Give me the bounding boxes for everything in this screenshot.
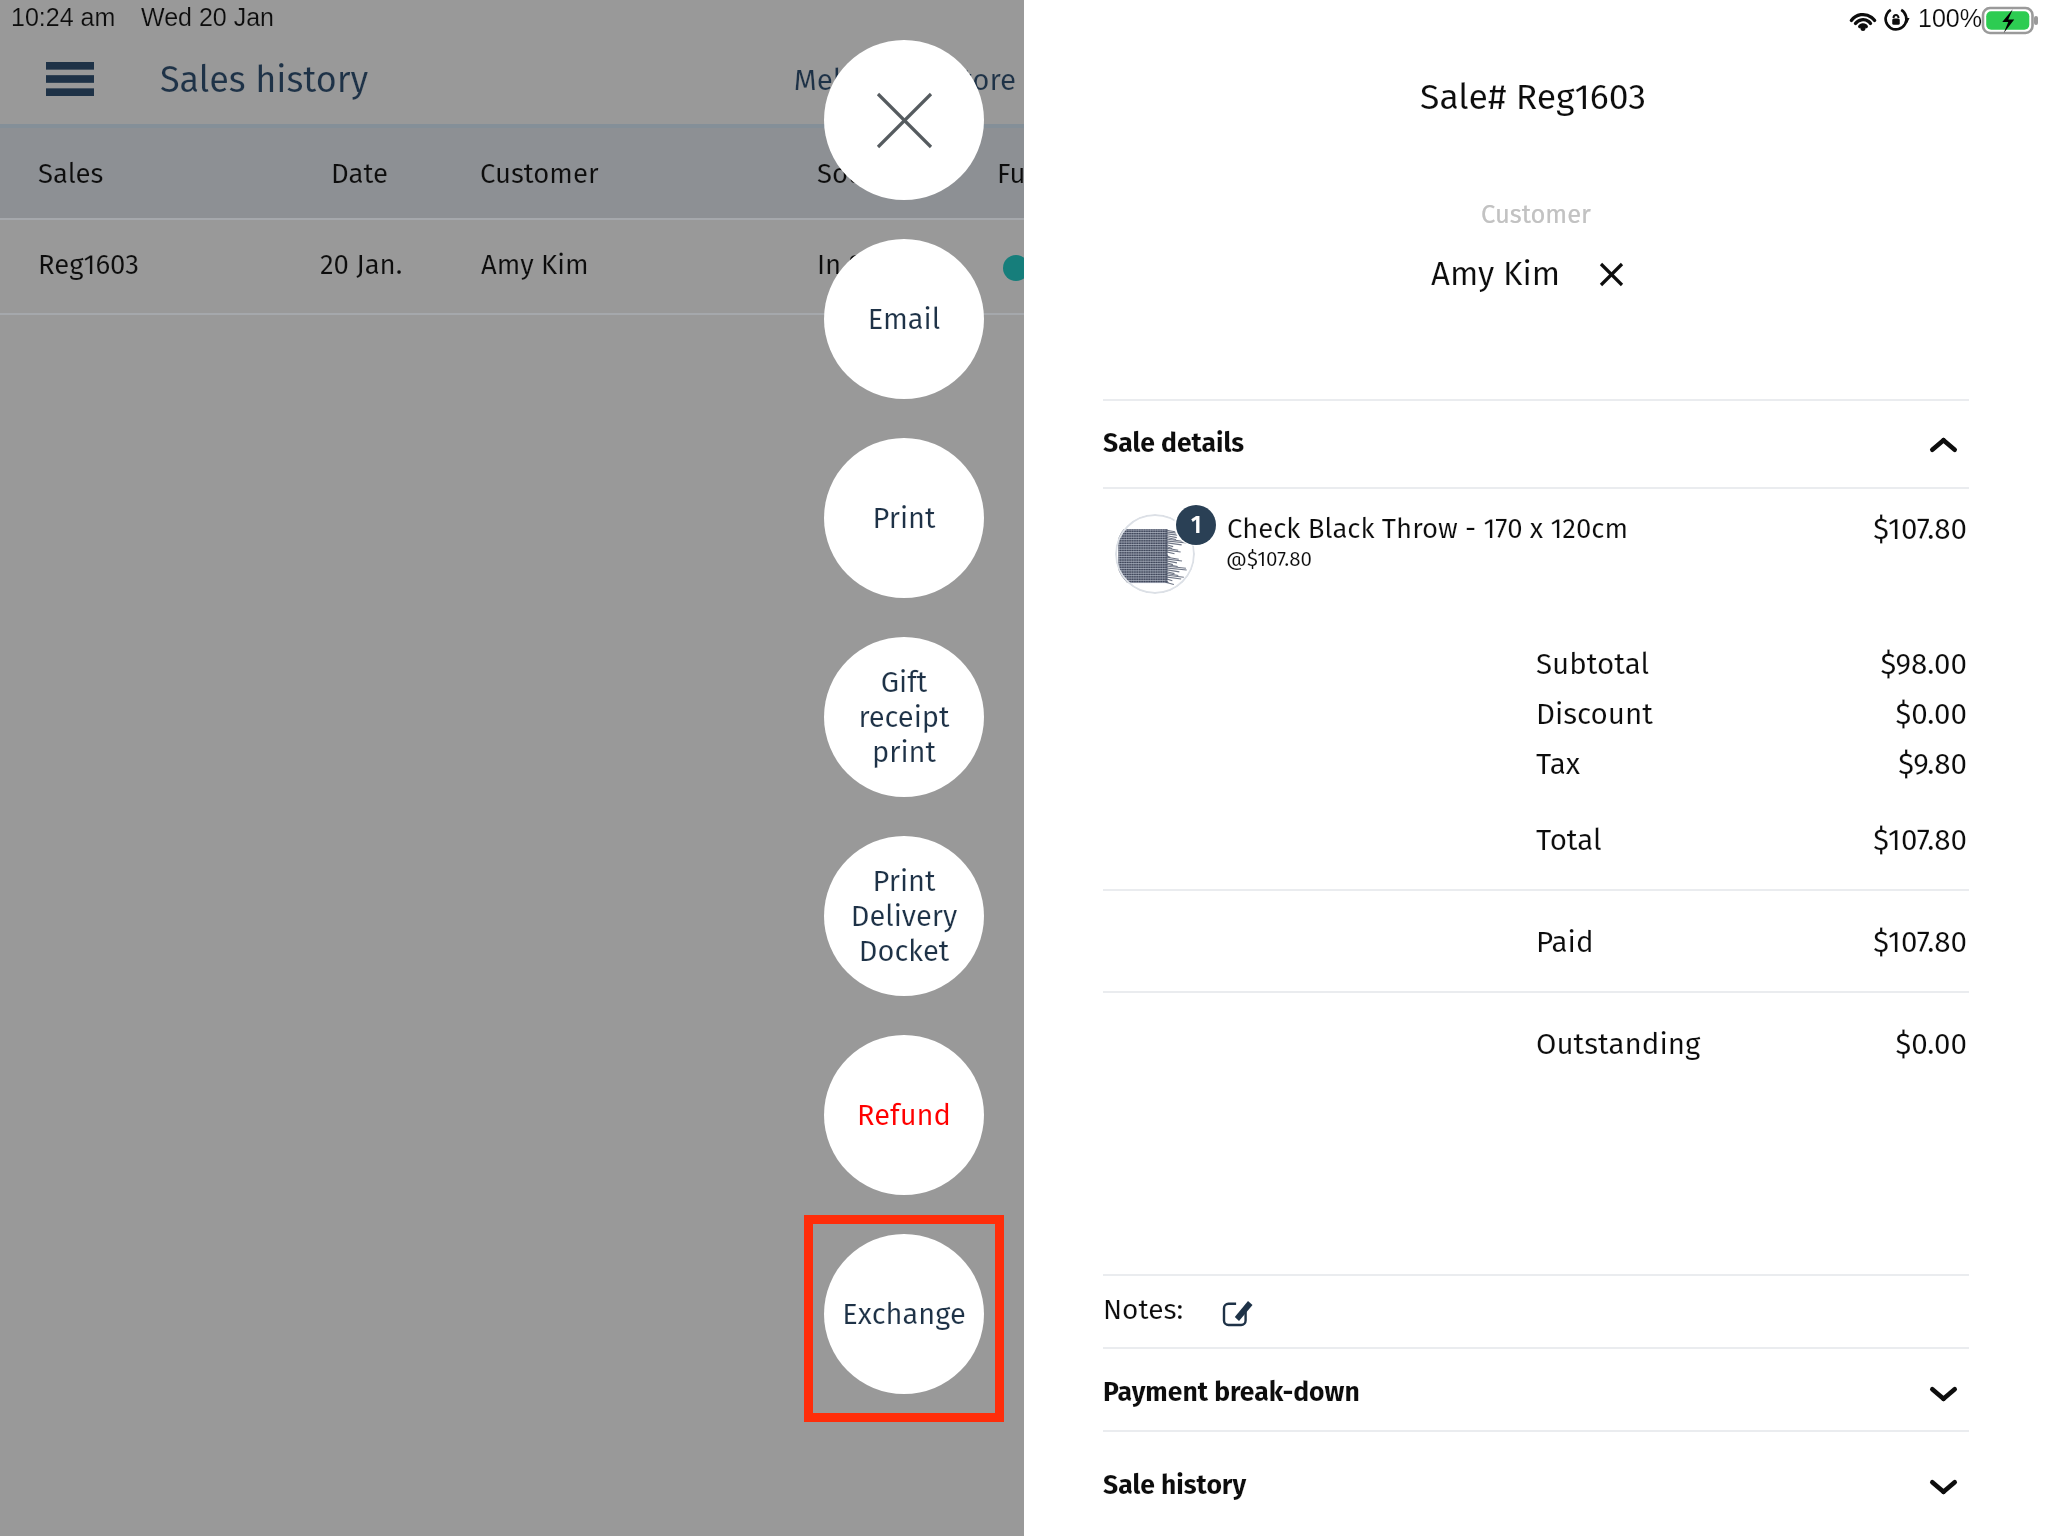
staticText: $107.80 bbox=[1667, 924, 1967, 959]
button[interactable]: Exchange bbox=[824, 1234, 984, 1394]
staticText: Amy Kim bbox=[1431, 254, 1560, 294]
staticText: Sale details bbox=[1103, 427, 1245, 459]
button[interactable]: Edit notes bbox=[1218, 1290, 1260, 1332]
staticText: In Store bbox=[817, 248, 914, 281]
staticText: $9.80 bbox=[1667, 746, 1967, 781]
button[interactable]: Print bbox=[824, 438, 984, 598]
staticText: 20 Jan. bbox=[320, 248, 403, 281]
staticText: 10:24 am bbox=[11, 3, 116, 31]
staticText: Tax bbox=[1536, 746, 1581, 781]
button[interactable]: Payment break-down bbox=[1024, 1349, 2048, 1431]
staticText: Melbourne Store bbox=[700, 62, 1016, 97]
staticText: 1 bbox=[1191, 511, 1202, 539]
staticText: Print bbox=[824, 501, 984, 536]
button[interactable]: Sale history bbox=[1024, 1432, 2048, 1536]
staticText: Notes: bbox=[1103, 1293, 1184, 1327]
staticText: Paid bbox=[1536, 924, 1594, 959]
staticText: Sale history bbox=[1103, 1469, 1247, 1501]
button[interactable]: Collapse Sale details bbox=[1919, 421, 1967, 469]
button[interactable]: Print Delivery Docket bbox=[824, 836, 984, 996]
button[interactable]: Expand Payment break-down bbox=[1919, 1370, 1967, 1418]
staticText: Check Black Throw - 170 x 120cm bbox=[1227, 512, 1629, 545]
staticText: $0.00 bbox=[1667, 696, 1967, 731]
staticText: Reg1603 bbox=[38, 248, 139, 281]
staticText: Outstanding bbox=[1536, 1026, 1701, 1061]
button[interactable]: Expand Sale history bbox=[1919, 1463, 1967, 1511]
staticText: Sales bbox=[38, 157, 104, 190]
button[interactable]: Sale details bbox=[1024, 402, 2048, 487]
staticText: Discount bbox=[1536, 696, 1653, 731]
staticText: 100% bbox=[1918, 4, 1982, 32]
staticText: @$107.80 bbox=[1226, 547, 1313, 572]
button[interactable]: Email bbox=[824, 239, 984, 399]
staticText: Print Delivery Docket bbox=[824, 864, 984, 969]
staticText: Payment break-down bbox=[1103, 1376, 1360, 1408]
staticText: $107.80 bbox=[1667, 822, 1967, 857]
staticText: Wed 20 Jan bbox=[141, 3, 274, 31]
staticText: Exchange bbox=[824, 1297, 984, 1332]
staticText: Subtotal bbox=[1536, 646, 1650, 681]
staticText: Refund bbox=[824, 1098, 984, 1133]
staticText: $107.80 bbox=[1667, 511, 1967, 546]
button[interactable]: Remove customer bbox=[1591, 254, 1631, 294]
staticText: Date bbox=[331, 157, 388, 190]
staticText: Source bbox=[817, 157, 902, 190]
staticText: Customer bbox=[1024, 199, 2048, 230]
button[interactable]: Menu bbox=[34, 53, 106, 105]
staticText: Sales history bbox=[160, 58, 369, 101]
button[interactable]: Gift receipt print bbox=[824, 637, 984, 797]
button[interactable]: Notes: bbox=[1024, 1276, 2048, 1347]
button[interactable] bbox=[0, 220, 1024, 313]
staticText: Gift receipt print bbox=[824, 665, 984, 770]
staticText: $0.00 bbox=[1667, 1026, 1967, 1061]
staticText: Email bbox=[824, 302, 984, 337]
staticText: Total bbox=[1536, 822, 1602, 857]
staticText: Fulfilment bbox=[997, 157, 1123, 190]
staticText: Sale# Reg1603 bbox=[1021, 76, 2045, 119]
staticText: $98.00 bbox=[1667, 646, 1967, 681]
staticText: Amy Kim bbox=[481, 248, 589, 281]
button[interactable]: Refund bbox=[824, 1035, 984, 1195]
button[interactable]: Close bbox=[824, 40, 984, 200]
staticText: Customer bbox=[480, 157, 599, 190]
